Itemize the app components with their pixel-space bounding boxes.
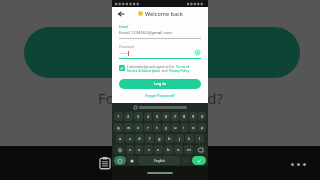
staticText: 5 (156, 114, 159, 119)
button[interactable]: 5 (153, 112, 161, 121)
staticText: 6 (165, 114, 168, 119)
staticText: 4 (147, 114, 150, 119)
button[interactable]: 6 (162, 112, 170, 121)
staticText: f (149, 136, 151, 141)
staticText: v (157, 147, 160, 152)
button[interactable]: v (154, 145, 163, 154)
button[interactable]: Backspace (194, 145, 206, 154)
staticText: y (165, 125, 168, 130)
button[interactable]: 1 (114, 112, 123, 121)
staticText: i (183, 125, 185, 130)
staticText: h (168, 136, 171, 141)
staticText: l (199, 136, 201, 141)
button[interactable]: c (144, 145, 153, 154)
button[interactable]: h (165, 134, 174, 143)
button[interactable]: j (175, 134, 184, 143)
staticText: j (179, 136, 181, 141)
button[interactable]: m (184, 145, 193, 154)
staticText: Privacy Policy (169, 69, 190, 73)
staticText: 9 (192, 114, 195, 119)
button[interactable]: Settings (127, 156, 137, 165)
button[interactable]: l (195, 134, 204, 143)
button[interactable]: 9 (189, 112, 197, 121)
staticText: Service & Subscription (127, 69, 161, 73)
staticText: s (129, 136, 131, 141)
staticText: I acknowledge and agree to the (127, 65, 176, 69)
staticText: 0 (201, 114, 204, 119)
button[interactable]: k (185, 134, 194, 143)
staticText: and (161, 69, 169, 73)
button[interactable]: b (164, 145, 173, 154)
button[interactable]: Back (116, 9, 125, 18)
button[interactable]: t (153, 123, 161, 132)
staticText: p (201, 125, 204, 130)
button[interactable]: p (198, 123, 206, 132)
button[interactable]: n (174, 145, 183, 154)
staticText: u (174, 125, 177, 130)
button[interactable]: 3 (134, 112, 143, 121)
staticText: k (188, 136, 191, 141)
staticText: o (192, 125, 195, 130)
button[interactable]: English (138, 156, 180, 165)
button[interactable]: d (135, 134, 144, 143)
button[interactable]: y (162, 123, 170, 132)
staticText: g (158, 136, 161, 141)
staticText: Terms of (176, 65, 190, 69)
button[interactable]: z (126, 145, 134, 154)
button[interactable]: Period (181, 156, 191, 165)
button[interactable]: w (124, 123, 133, 132)
staticText: 3 (137, 114, 140, 119)
staticText: x (138, 147, 141, 152)
button[interactable]: s (125, 134, 134, 143)
button[interactable]: x (135, 145, 143, 154)
staticText: a (119, 136, 122, 141)
button[interactable]: i (180, 123, 188, 132)
button[interactable]: a (116, 134, 124, 143)
button[interactable]: 7 (171, 112, 179, 121)
staticText: m (187, 147, 191, 152)
staticText: Email.1234562@gmail.com (119, 30, 172, 36)
staticText: 8 (183, 114, 186, 119)
button[interactable]: Clipboard (96, 154, 114, 172)
button[interactable]: Log in (119, 79, 201, 89)
staticText: . (185, 158, 187, 163)
staticText: n (177, 147, 180, 152)
staticText: b (167, 147, 170, 152)
button[interactable]: f (145, 134, 154, 143)
button[interactable]: e (134, 123, 143, 132)
staticText: 2 (127, 114, 130, 119)
staticText: q (117, 125, 120, 130)
staticText: r (147, 125, 149, 130)
staticText: z (129, 147, 131, 152)
button[interactable]: q (114, 123, 123, 132)
staticText: Welcome back (145, 10, 183, 17)
button[interactable]: 2 (124, 112, 133, 121)
button[interactable]: u (171, 123, 179, 132)
button[interactable]: r (144, 123, 152, 132)
button[interactable]: 4 (144, 112, 152, 121)
staticText: 1 (117, 114, 120, 119)
button[interactable]: Show password (194, 49, 201, 56)
button[interactable]: Shift (114, 145, 125, 154)
button[interactable]: I acknowledge and agree to the (119, 65, 201, 73)
staticText: —— (119, 50, 128, 56)
staticText: t (156, 125, 158, 130)
staticText: English (154, 159, 165, 163)
staticText: c (148, 147, 150, 152)
staticText: Forgot Password? (98, 88, 223, 108)
staticText: w (127, 125, 131, 130)
button[interactable]: 8 (180, 112, 188, 121)
staticText: Log in (154, 81, 167, 87)
button[interactable]: Enter (192, 156, 206, 165)
staticText: Password (119, 44, 135, 49)
button[interactable]: o (189, 123, 197, 132)
button[interactable]: g (155, 134, 164, 143)
staticText: e (137, 125, 140, 130)
staticText: 7 (174, 114, 177, 119)
button[interactable]: 0 (198, 112, 206, 121)
button[interactable]: Forgot Password? (145, 93, 175, 98)
button[interactable]: Emoji (114, 156, 126, 165)
staticText: d (138, 136, 141, 141)
button[interactable]: Clipboard suggestion (133, 105, 137, 109)
staticText: Email (119, 24, 128, 29)
